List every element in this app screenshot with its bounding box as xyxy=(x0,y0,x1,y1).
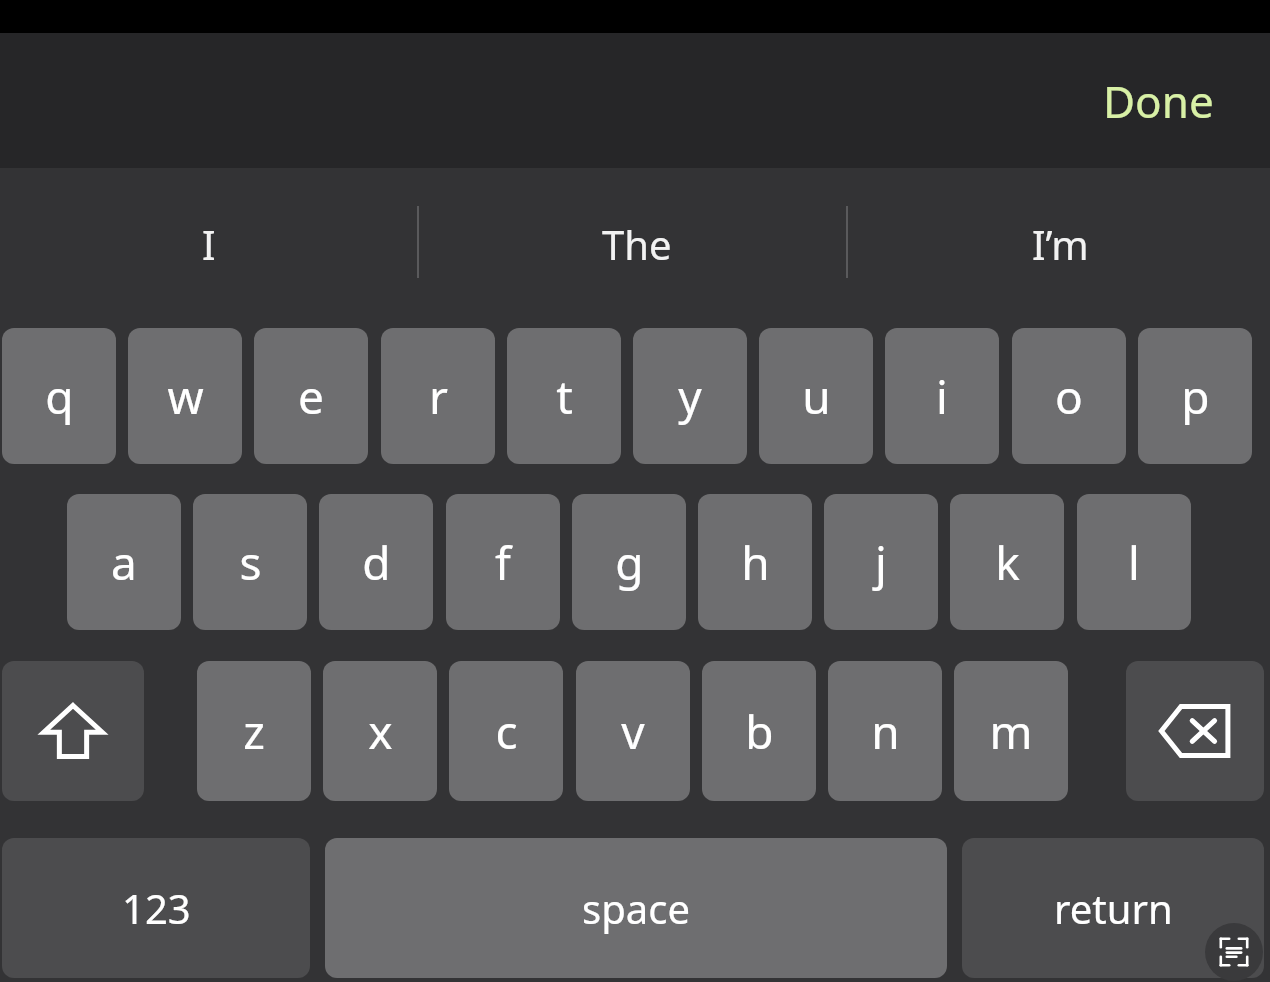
button[interactable]: u xyxy=(759,328,873,464)
button[interactable]: k xyxy=(950,494,1064,630)
staticText: c xyxy=(495,700,518,763)
button[interactable]: Backspace xyxy=(1126,661,1264,801)
staticText: d xyxy=(362,531,391,594)
staticText: h xyxy=(741,531,770,594)
staticText: y xyxy=(678,365,702,428)
staticText: w xyxy=(167,365,204,428)
staticText: The xyxy=(602,217,672,271)
staticText: j xyxy=(875,531,887,594)
button[interactable]: p xyxy=(1138,328,1252,464)
button[interactable]: a xyxy=(67,494,181,630)
staticText: l xyxy=(1128,531,1140,594)
button[interactable]: d xyxy=(319,494,433,630)
staticText: n xyxy=(871,700,900,763)
button[interactable]: i xyxy=(885,328,999,464)
staticText: z xyxy=(243,700,265,763)
staticText: return xyxy=(1054,881,1173,935)
button[interactable]: q xyxy=(2,328,116,464)
button[interactable]: r xyxy=(381,328,495,464)
button[interactable]: m xyxy=(954,661,1068,801)
button[interactable]: e xyxy=(254,328,368,464)
staticText: u xyxy=(802,365,831,428)
staticText: k xyxy=(995,531,1020,594)
staticText: I xyxy=(202,217,216,271)
button[interactable]: y xyxy=(633,328,747,464)
staticText: x xyxy=(368,700,393,763)
button[interactable]: return xyxy=(962,838,1264,978)
button[interactable]: 123 xyxy=(2,838,310,978)
button[interactable]: c xyxy=(449,661,563,801)
button[interactable]: I xyxy=(0,168,417,320)
button[interactable]: space xyxy=(325,838,947,978)
button[interactable]: g xyxy=(572,494,686,630)
button[interactable]: Scan text xyxy=(1205,923,1263,981)
button[interactable]: l xyxy=(1077,494,1191,630)
staticText: v xyxy=(621,700,645,763)
button[interactable]: v xyxy=(576,661,690,801)
button[interactable]: z xyxy=(197,661,311,801)
button[interactable]: j xyxy=(824,494,938,630)
staticText: f xyxy=(495,531,511,594)
staticText: i xyxy=(936,365,948,428)
staticText: r xyxy=(429,365,448,428)
button[interactable]: h xyxy=(698,494,812,630)
button[interactable]: s xyxy=(193,494,307,630)
button[interactable]: I’m xyxy=(851,168,1270,320)
staticText: g xyxy=(615,531,644,594)
staticText: b xyxy=(745,700,774,763)
staticText: m xyxy=(989,700,1033,763)
staticText: space xyxy=(582,881,690,935)
button[interactable]: t xyxy=(507,328,621,464)
button[interactable]: The xyxy=(423,168,851,320)
button[interactable]: n xyxy=(828,661,942,801)
staticText: I’m xyxy=(1032,217,1089,271)
button[interactable]: o xyxy=(1012,328,1126,464)
staticText: t xyxy=(556,365,573,428)
staticText: a xyxy=(111,531,137,594)
button[interactable]: x xyxy=(323,661,437,801)
staticText: s xyxy=(239,531,262,594)
button[interactable]: f xyxy=(446,494,560,630)
button[interactable]: Done xyxy=(1103,71,1214,131)
button[interactable]: b xyxy=(702,661,816,801)
button[interactable]: Shift xyxy=(2,661,144,801)
staticText: o xyxy=(1055,365,1083,428)
staticText: q xyxy=(45,365,74,428)
staticText: 123 xyxy=(122,881,191,935)
staticText: e xyxy=(298,365,324,428)
staticText: Done xyxy=(1103,71,1214,131)
staticText: p xyxy=(1181,365,1210,428)
button[interactable]: w xyxy=(128,328,242,464)
